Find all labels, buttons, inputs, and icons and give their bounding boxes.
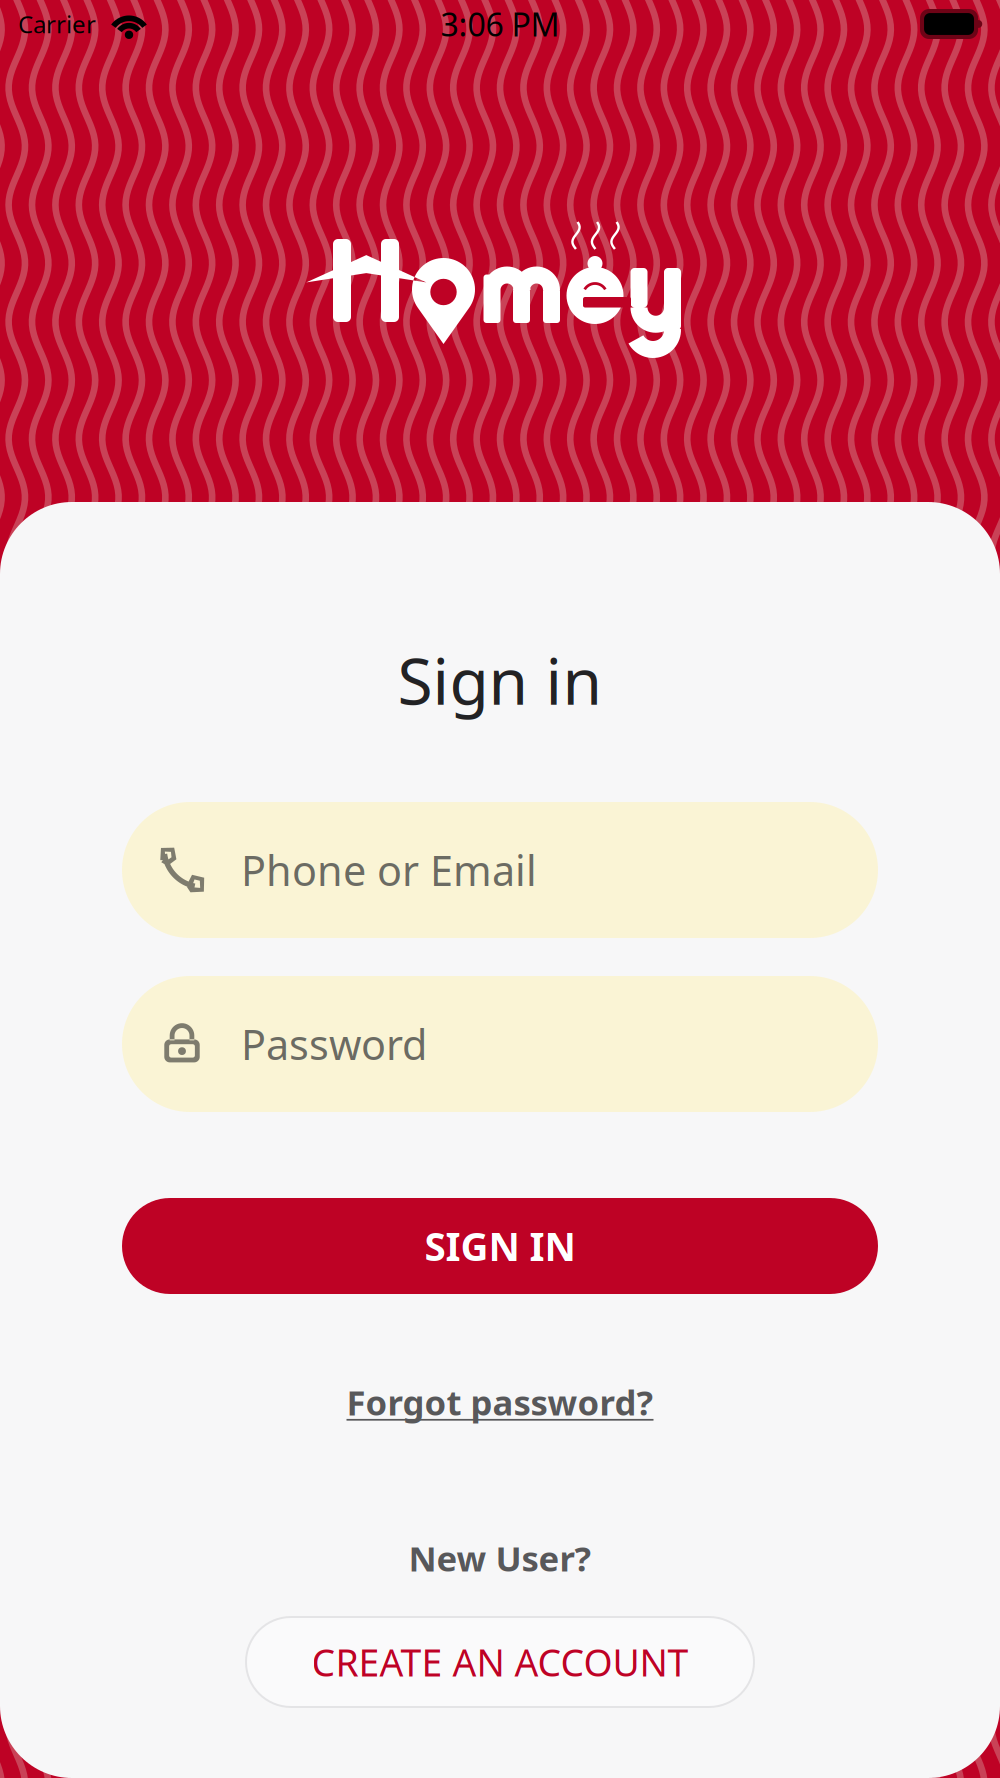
staticText: Forgot password?	[346, 1379, 653, 1425]
staticText: New User?	[408, 1535, 591, 1581]
staticText: Sign in	[397, 637, 602, 722]
button[interactable]: CREATE AN ACCOUNT	[246, 1617, 754, 1707]
staticText: 3:06 PM	[440, 3, 559, 45]
staticText: Carrier	[18, 8, 96, 40]
staticText: Password	[241, 1017, 427, 1071]
staticText: Phone or Email	[241, 843, 537, 897]
button[interactable]: SIGN IN	[122, 1198, 878, 1294]
staticText: CREATE AN ACCOUNT	[311, 1637, 688, 1687]
button[interactable]: Forgot password?	[280, 1376, 720, 1428]
staticText: SIGN IN	[424, 1220, 575, 1272]
